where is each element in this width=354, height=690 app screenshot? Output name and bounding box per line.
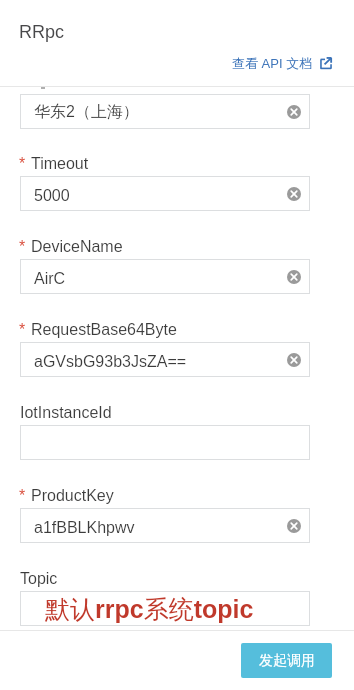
staticText: DeviceName [31, 238, 123, 256]
button[interactable]: aGVsbG93b3JsZA== [20, 342, 310, 377]
button[interactable]: Clear text [282, 514, 306, 538]
staticText: RRpc [19, 22, 65, 42]
staticText: RequestBase64Byte [31, 321, 177, 339]
staticText: 默认rrpc系统topic [45, 594, 254, 625]
button[interactable]: 发起调用 [241, 643, 332, 678]
button[interactable]: AirC [20, 259, 310, 294]
staticText: * [19, 238, 26, 256]
staticText: * [19, 321, 26, 339]
staticText: AirC [34, 270, 66, 288]
staticText: aGVsbG93b3JsZA== [34, 353, 187, 371]
staticText: Topic [20, 570, 58, 588]
staticText: 发起调用 [259, 652, 315, 670]
staticText: 查看 API 文档 [232, 55, 313, 71]
button[interactable]: a1fBBLKhpwv [20, 508, 310, 543]
staticText: IotInstanceId [20, 404, 112, 422]
staticText: * [19, 487, 26, 505]
button[interactable]: 默认rrpc系统topic [20, 591, 310, 626]
staticText: Timeout [31, 155, 89, 173]
button[interactable]: Clear text [282, 100, 306, 124]
staticText: 5000 [34, 187, 70, 205]
staticText: a1fBBLKhpwv [34, 519, 135, 537]
staticText: 华东2（上海） [34, 102, 139, 122]
staticText: * [19, 155, 26, 173]
other: Open API documentation [320, 57, 332, 69]
button[interactable]: 5000 [20, 176, 310, 211]
button[interactable]: 华东2（上海） [20, 94, 310, 129]
button[interactable]: Clear text [282, 182, 306, 206]
staticText: ProductKey [31, 487, 114, 505]
button[interactable]: 查看 API 文档 [232, 55, 332, 71]
button[interactable] [20, 425, 310, 460]
button[interactable]: Clear text [282, 265, 306, 289]
button[interactable]: Clear text [282, 348, 306, 372]
